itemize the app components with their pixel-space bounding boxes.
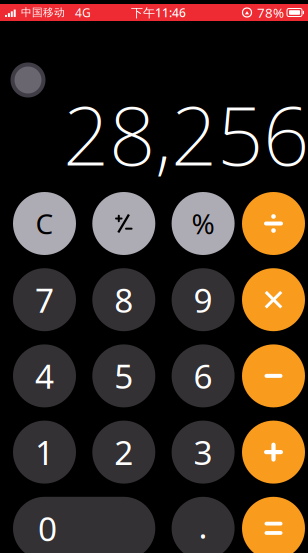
staticText: 下午11:46 [131,4,186,20]
button[interactable]: 8 [92,268,155,331]
button[interactable]: . [172,497,235,553]
button[interactable]: Plus minus [92,192,155,255]
button[interactable]: 3 [172,421,235,484]
button[interactable]: 7 [13,268,76,331]
staticText: 4 [35,354,54,398]
staticText: C [35,205,53,242]
button[interactable]: Minus [242,344,305,407]
button[interactable]: 4 [13,344,76,407]
staticText: 中国移动 [21,6,65,19]
button[interactable]: 2 [92,421,155,484]
staticText: 5 [114,354,133,398]
button[interactable]: 9 [172,268,235,331]
button[interactable]: % [172,192,235,255]
staticText: 9 [194,278,213,322]
staticText: % [192,205,215,242]
staticText: 7 [35,278,54,322]
button[interactable]: C [13,192,76,255]
button[interactable]: 0 [13,497,155,553]
staticText: 2 [114,430,133,474]
staticText: 0 [38,506,57,550]
staticText: 3 [194,430,213,474]
button[interactable]: 6 [172,344,235,407]
button[interactable]: AssistiveTouch [10,62,45,97]
button[interactable]: 5 [92,344,155,407]
staticText: 8 [114,278,133,322]
button[interactable]: Equals [242,497,305,553]
button[interactable]: 1 [13,421,76,484]
staticText: . [199,504,208,548]
button[interactable]: Plus [242,421,305,484]
staticText: 4G [75,4,91,20]
button[interactable]: Multiply [242,268,305,331]
staticText: 1 [35,430,54,474]
staticText: 28,256 [63,80,308,188]
button[interactable]: Divide [242,192,305,255]
staticText: 78% [257,4,284,21]
staticText: 6 [194,354,213,398]
